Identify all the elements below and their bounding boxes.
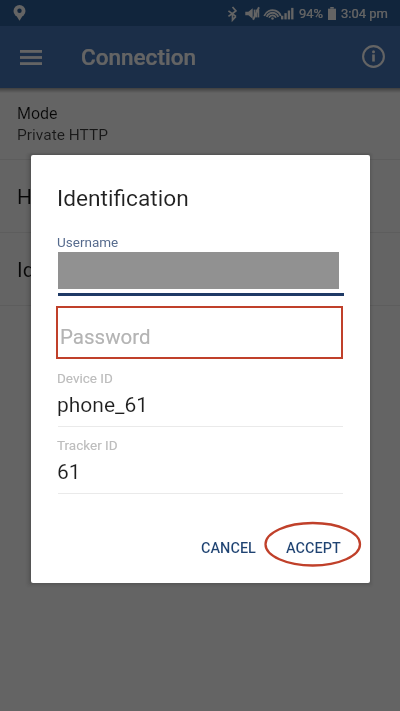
button[interactable]: ACCEPT [277,531,349,565]
staticText: Connection [81,44,196,70]
button[interactable]: CANCEL [192,531,264,565]
staticText: Private HTTP [17,126,108,144]
button[interactable]: Mode [0,88,400,159]
button[interactable]: Open navigation menu [9,35,53,79]
staticText: 94% [299,6,324,21]
staticText: 3:04 pm [341,6,388,21]
staticText: Tracker ID [57,437,118,453]
staticText: phone_61 [57,393,149,418]
staticText: Password [60,325,151,349]
staticText: Device ID [57,370,113,386]
staticText: CANCEL [201,540,256,557]
staticText: Username [57,234,119,250]
button[interactable]: Host [0,160,400,232]
button[interactable]: Info [351,35,395,79]
button[interactable]: Password [56,306,343,359]
staticText: Identification [57,185,189,212]
staticText: Mode [17,104,58,123]
staticText: Host [17,185,62,210]
staticText: Identification [17,258,139,283]
button[interactable]: Identification [0,233,400,305]
staticText: 61 [57,460,81,485]
staticText: ACCEPT [286,540,341,557]
